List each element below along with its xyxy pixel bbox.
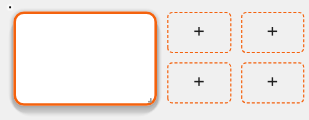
button[interactable]: Add widget here bbox=[168, 63, 231, 103]
button[interactable]: Add widget here bbox=[168, 13, 231, 53]
button[interactable]: Add widget here bbox=[242, 13, 304, 53]
button[interactable]: Add widget here bbox=[242, 63, 304, 103]
button[interactable]: Selected widget bbox=[13, 11, 157, 105]
button[interactable]: Resize widget bbox=[145, 95, 156, 106]
